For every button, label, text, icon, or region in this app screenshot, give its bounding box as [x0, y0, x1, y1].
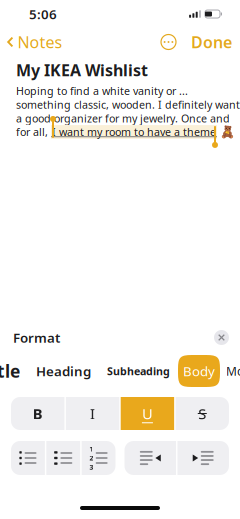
- staticText: Done: [191, 31, 232, 53]
- staticText: Hoping to find a white vanity or ...: [16, 84, 188, 98]
- staticText: 5:06: [29, 5, 57, 23]
- staticText: I: [90, 404, 95, 423]
- button[interactable]: Heading: [28, 355, 99, 387]
- button[interactable]: Increase indent: [177, 441, 229, 475]
- button[interactable]: Dashed list: [11, 441, 45, 475]
- button[interactable]: Subheading: [99, 355, 178, 387]
- button[interactable]: Close: [214, 330, 229, 345]
- button[interactable]: More: [157, 30, 180, 53]
- button[interactable]: Mor: [220, 355, 240, 387]
- button[interactable]: Decrease indent: [124, 441, 176, 475]
- button[interactable]: Numbered list: [82, 441, 115, 475]
- staticText: I want my room to have a theme: [52, 125, 216, 139]
- staticText: S: [198, 404, 206, 423]
- staticText: a good organizer for my jewelry. Once an…: [16, 111, 230, 125]
- button[interactable]: B: [11, 397, 64, 430]
- button[interactable]: U: [121, 397, 174, 430]
- staticText: My IKEA Wishlist: [16, 59, 148, 81]
- staticText: Mor: [226, 363, 240, 379]
- staticText: Body: [183, 362, 215, 380]
- staticText: Heading: [36, 362, 91, 380]
- staticText: Format: [13, 329, 60, 346]
- staticText: 1: [89, 444, 93, 453]
- staticText: U: [142, 404, 153, 423]
- staticText: Notes: [17, 31, 62, 53]
- staticText: 3: [89, 463, 93, 471]
- button[interactable]: I: [66, 397, 119, 430]
- staticText: something classic, wooden. I definitely …: [16, 97, 240, 112]
- button[interactable]: Done: [180, 25, 232, 59]
- staticText: Subheading: [107, 364, 170, 378]
- button[interactable]: Title: [0, 355, 28, 387]
- staticText: B: [33, 404, 43, 423]
- button[interactable]: S: [176, 397, 229, 430]
- button[interactable]: Notes: [7, 25, 70, 59]
- staticText: Title: [0, 359, 20, 382]
- button[interactable]: Bulleted list: [46, 441, 80, 475]
- staticText: 🧸: [220, 125, 235, 139]
- staticText: 2: [89, 454, 93, 462]
- staticText: for all,: [16, 125, 51, 139]
- button[interactable]: Body: [178, 355, 220, 387]
